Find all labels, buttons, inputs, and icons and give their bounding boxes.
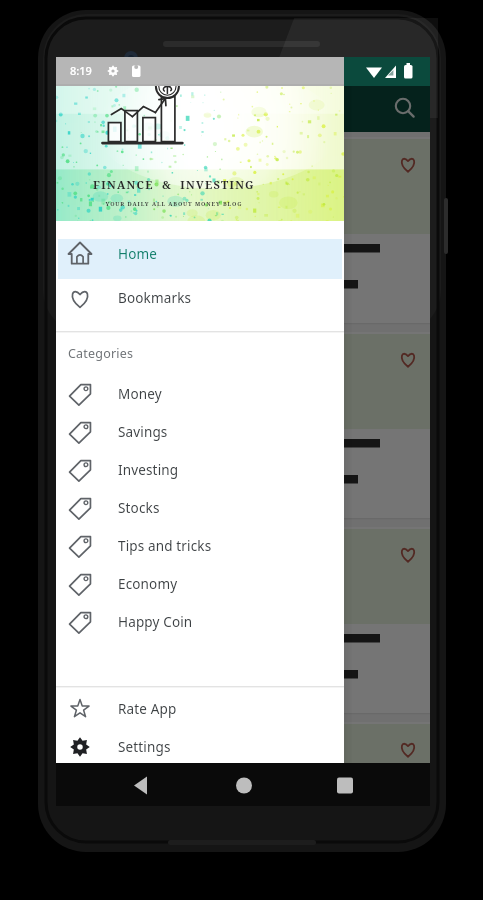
button[interactable]: Savings xyxy=(56,413,344,451)
staticText: Home xyxy=(118,245,158,263)
button[interactable]: Rate App xyxy=(56,690,344,728)
button[interactable]: Back xyxy=(119,768,163,802)
staticText: Investing xyxy=(118,461,179,479)
staticText: FINANCE & INVESTING xyxy=(74,177,274,192)
button[interactable]: Happy Coin xyxy=(56,603,344,641)
button[interactable]: Money xyxy=(56,375,344,413)
button[interactable]: FINANCE & INVESTING xyxy=(56,86,344,225)
staticText: Settings xyxy=(118,738,171,756)
staticText: Bookmarks xyxy=(118,289,192,307)
staticText: Savings xyxy=(118,423,168,441)
staticText: Tips and tricks xyxy=(118,537,212,555)
button[interactable]: Investing xyxy=(56,451,344,489)
staticText: Economy xyxy=(118,575,178,593)
button[interactable]: Tips and tricks xyxy=(56,527,344,565)
staticText: Categories xyxy=(68,345,134,362)
staticText: Money xyxy=(118,385,162,403)
button[interactable]: Search xyxy=(384,86,426,128)
staticText: Stocks xyxy=(118,499,160,517)
staticText: Happy Coin xyxy=(118,613,193,631)
staticText: Rate App xyxy=(118,700,177,718)
staticText: YOUR DAILY ALL ABOUT MONEY BLOG xyxy=(74,200,274,207)
button[interactable]: Bookmarks xyxy=(56,276,344,320)
button[interactable]: Settings xyxy=(56,728,344,766)
button[interactable]: Home xyxy=(56,232,344,276)
button[interactable]: Economy xyxy=(56,565,344,603)
button[interactable]: Stocks xyxy=(56,489,344,527)
button[interactable]: Home xyxy=(222,768,266,802)
button[interactable]: Recent apps xyxy=(323,768,367,802)
staticText: 8:19 xyxy=(70,63,92,78)
